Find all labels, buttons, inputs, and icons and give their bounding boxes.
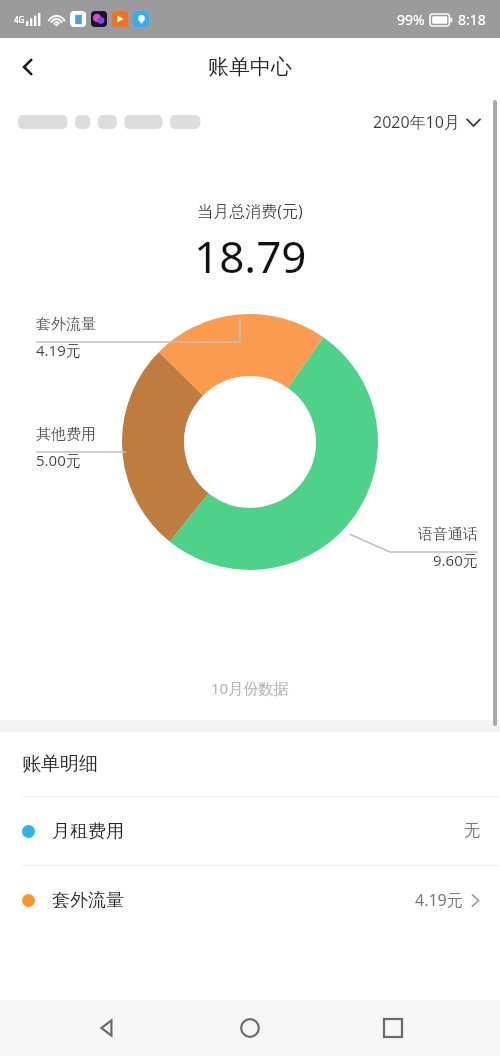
button[interactable]: Recent apps bbox=[357, 1000, 429, 1056]
button[interactable]: Home bbox=[214, 1000, 286, 1056]
staticText: 5.00元 bbox=[36, 450, 81, 470]
staticText: 账单中心 bbox=[208, 54, 292, 80]
staticText: 8:18 bbox=[458, 10, 486, 29]
staticText: 语音通话 bbox=[418, 525, 478, 544]
staticText: 18.79 bbox=[194, 226, 307, 286]
button[interactable]: Back bbox=[0, 39, 56, 95]
button[interactable]: 2020年10月 bbox=[373, 111, 480, 133]
button[interactable]: Back bbox=[71, 1000, 143, 1056]
staticText: 4.19元 bbox=[415, 889, 463, 911]
staticText: 其他费用 bbox=[36, 425, 96, 444]
staticText: 账单明细 bbox=[22, 752, 98, 776]
staticText: 套外流量 bbox=[36, 315, 96, 334]
button[interactable]: 月租费用 bbox=[0, 797, 500, 865]
staticText: 无 bbox=[464, 821, 480, 841]
staticText: 99% bbox=[397, 10, 425, 29]
staticText: 当月总消费(元) bbox=[197, 200, 303, 222]
staticText: 10月份数据 bbox=[211, 678, 289, 698]
staticText: 9.60元 bbox=[433, 550, 478, 570]
staticText: 4G bbox=[14, 14, 25, 25]
staticText: 套外流量 bbox=[52, 889, 124, 912]
staticText: 4.19元 bbox=[36, 340, 81, 360]
button[interactable]: 套外流量 bbox=[0, 866, 500, 934]
staticText: 月租费用 bbox=[52, 820, 124, 843]
staticText: 2020年10月 bbox=[373, 111, 460, 133]
